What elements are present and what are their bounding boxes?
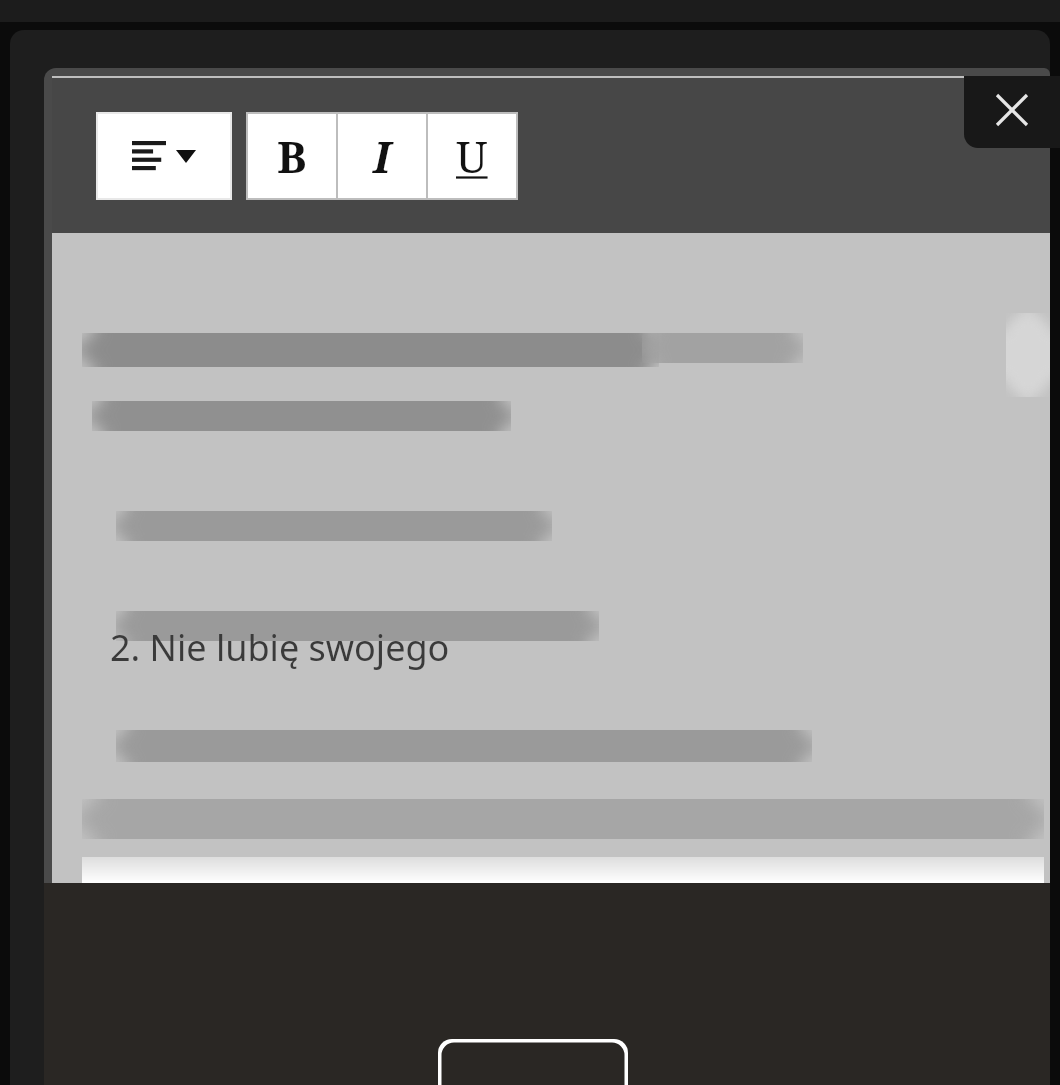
staticText: I	[373, 126, 391, 186]
button[interactable]: Bold	[248, 114, 336, 198]
staticText: B	[277, 126, 307, 186]
button[interactable]: Close	[964, 76, 1060, 148]
staticText: U	[456, 126, 488, 186]
button[interactable]: Underline	[428, 114, 516, 198]
button[interactable]: Italic	[338, 114, 426, 198]
button[interactable]: Action	[438, 1039, 628, 1085]
button[interactable]: Text alignment	[98, 114, 230, 198]
staticText: 2. Nie lubię swojego	[110, 623, 450, 672]
